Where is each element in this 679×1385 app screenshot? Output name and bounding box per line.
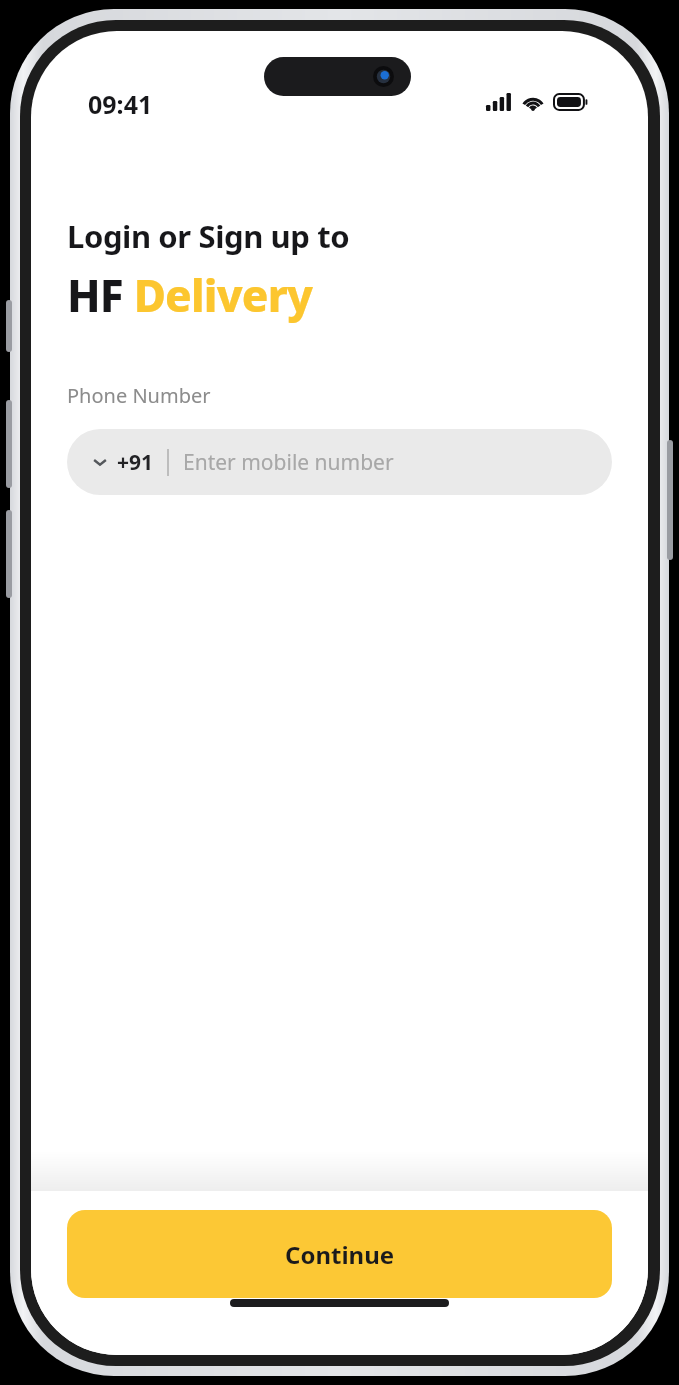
other: Wi-Fi: [521, 93, 545, 111]
other: Select country code: [93, 455, 107, 469]
other: Cellular signal: [486, 93, 512, 111]
staticText: Enter mobile number: [183, 448, 394, 477]
staticText: +91: [117, 448, 154, 477]
staticText: HF Delivery: [67, 265, 313, 325]
button[interactable]: Continue: [67, 1210, 612, 1298]
staticText: Login or Sign up to: [67, 215, 350, 257]
staticText: Phone Number: [67, 382, 211, 409]
staticText: 09:41: [88, 87, 153, 121]
staticText: Continue: [285, 1238, 395, 1271]
button[interactable]: Select country code: [67, 429, 612, 495]
other: Battery: [554, 93, 588, 111]
